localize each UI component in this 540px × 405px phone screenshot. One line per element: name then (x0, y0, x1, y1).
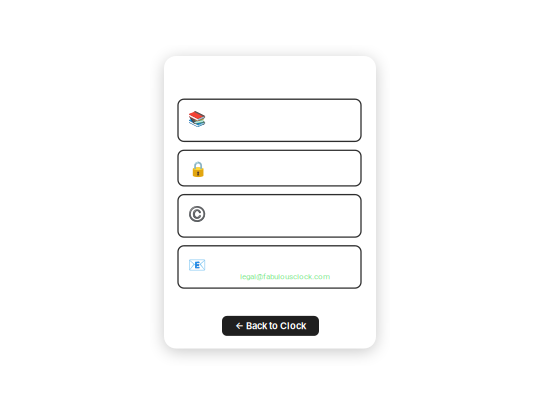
staticText: 📚 (188, 111, 206, 128)
button[interactable]: ← Back to Clock (222, 316, 319, 336)
button[interactable]: Privacy Policy (178, 150, 361, 186)
button[interactable]: Copyright Notice (178, 195, 361, 237)
staticText: 🔒 (188, 161, 206, 177)
staticText: ©️ (188, 206, 206, 223)
button[interactable]: Terms of Service (178, 99, 361, 141)
staticText: ← Back to Clock (235, 320, 306, 332)
staticText: 📧 (188, 257, 206, 273)
button[interactable]: Email legal@fabulousclock.com (178, 246, 361, 288)
staticText: legal@fabulousclock.com (240, 272, 330, 281)
